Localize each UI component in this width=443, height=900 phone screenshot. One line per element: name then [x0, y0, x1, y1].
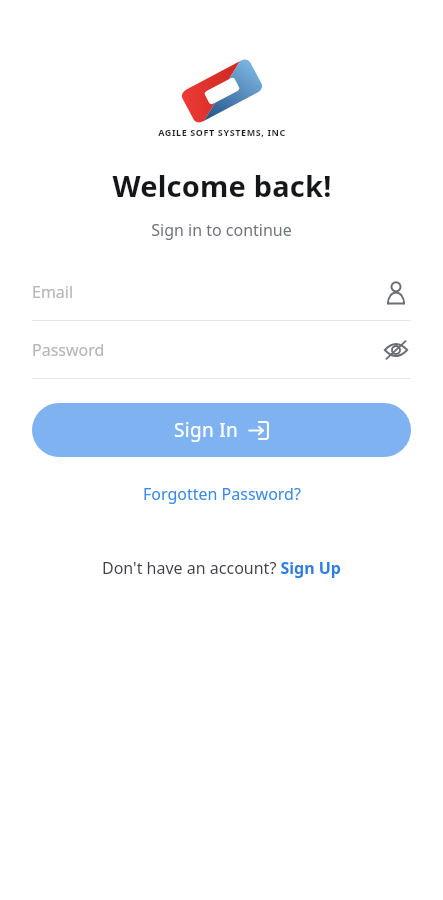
- staticText: AGILE SOFT SYSTEMS, INC: [158, 126, 286, 138]
- button[interactable]: Sign In: [32, 403, 411, 457]
- button[interactable]: Show password: [381, 335, 411, 365]
- staticText: Sign In: [174, 417, 238, 443]
- staticText: Sign in to continue: [151, 219, 292, 241]
- staticText: Forgotten Password?: [143, 483, 301, 505]
- button[interactable]: Email: [32, 263, 411, 320]
- staticText: Email: [32, 281, 381, 303]
- button[interactable]: Forgotten Password?: [133, 479, 311, 509]
- staticText: Don't have an account? Sign Up: [102, 557, 341, 579]
- button[interactable]: Don't have an account? Sign Up: [92, 553, 351, 583]
- staticText: Welcome back!: [112, 166, 332, 205]
- button[interactable]: Password: [32, 321, 411, 378]
- button[interactable]: Account: [381, 277, 411, 307]
- staticText: Password: [32, 339, 381, 361]
